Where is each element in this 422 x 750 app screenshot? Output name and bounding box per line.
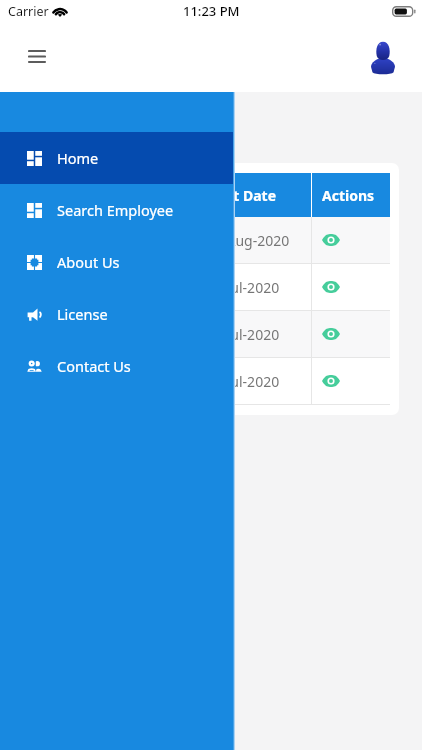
staticText: Home [57,148,99,168]
staticText: Carrier [8,3,49,20]
button[interactable]: View details [312,358,390,404]
button[interactable]: Open navigation menu [17,34,57,78]
staticText: Actions [322,186,375,205]
staticText: Contact Us [57,356,131,376]
button[interactable]: Home [0,132,235,184]
button[interactable]: About Us [0,236,235,288]
button[interactable]: License [0,288,235,340]
staticText: About Us [57,252,120,272]
staticText: Search Employee [57,200,174,220]
staticText: Employee Name [28,186,142,205]
staticText: 11:23 PM [183,2,240,20]
button[interactable]: Search Employee [0,184,235,236]
button[interactable]: View details [312,217,390,263]
staticText: 28-Jul-2020 [206,278,280,297]
staticText: 13-Aug-2020 [206,231,290,250]
staticText: 21-Jul-2020 [206,325,280,344]
button[interactable]: Contact Us [0,340,235,392]
staticText: 14-Jul-2020 [206,372,280,391]
staticText: Last Date [210,186,277,205]
button[interactable]: View details [312,311,390,357]
staticText: License [57,304,108,324]
button[interactable]: View details [312,264,390,310]
button[interactable]: Profile [362,36,404,80]
